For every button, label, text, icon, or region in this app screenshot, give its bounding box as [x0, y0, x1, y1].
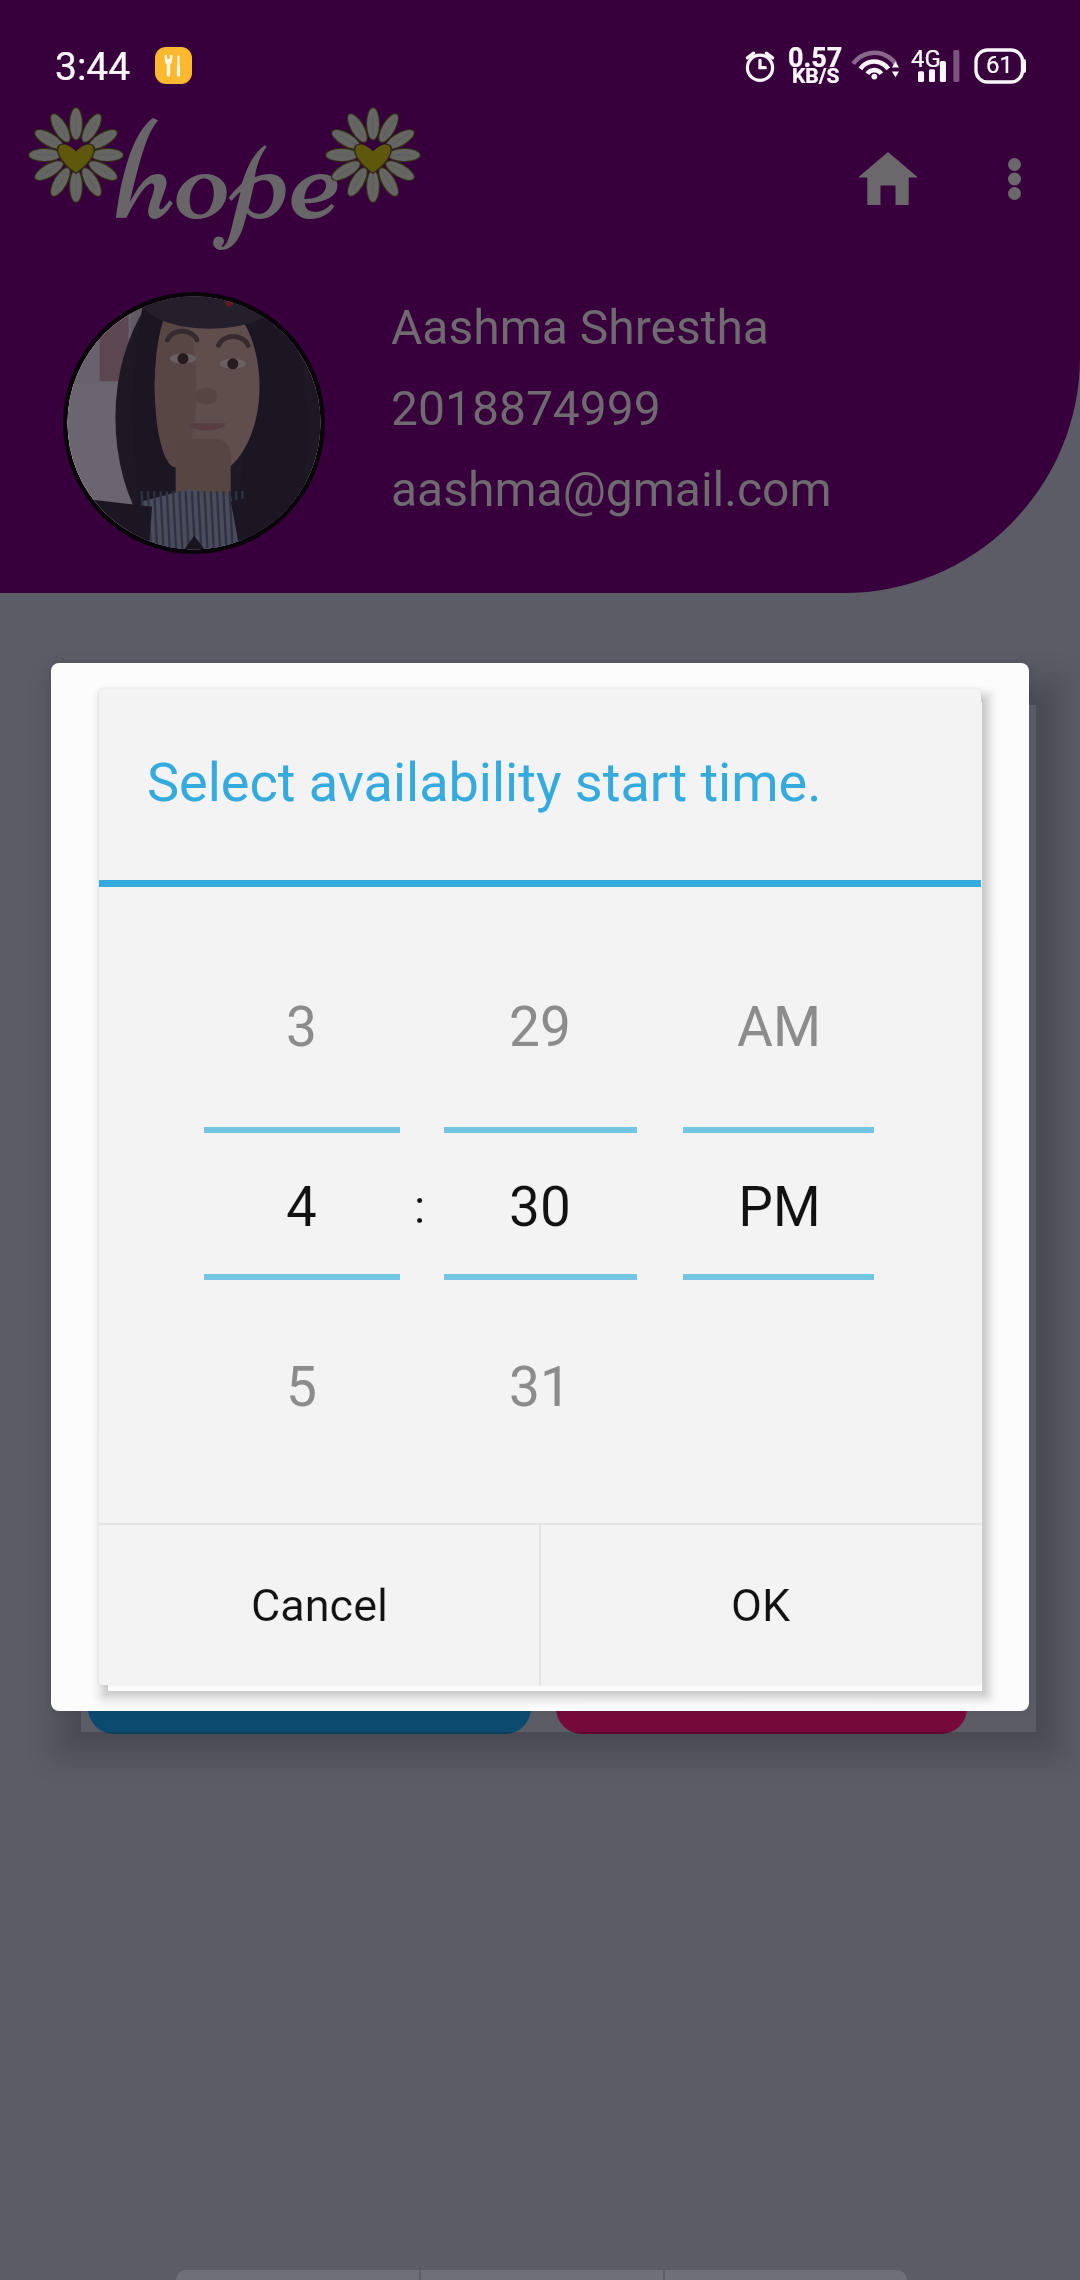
button[interactable]: Set end time — [556, 1624, 967, 1734]
staticText: 61 — [986, 51, 1013, 79]
staticText: aashma@gmail.com — [391, 461, 832, 517]
staticText: 2018874999 — [391, 380, 661, 436]
staticText: AM — [737, 995, 821, 1059]
button[interactable]: Profile photo — [63, 292, 325, 554]
staticText: 29 — [509, 995, 571, 1059]
staticText: OK — [731, 1579, 791, 1632]
button[interactable]: Home — [828, 119, 947, 238]
button[interactable]: 30 — [442, 1164, 638, 1250]
button[interactable]: 4 — [203, 1164, 399, 1250]
button[interactable]: 3 — [203, 984, 399, 1070]
staticText: Cancel — [251, 1579, 388, 1632]
staticText: 0.57 — [788, 42, 843, 74]
staticText: : — [414, 1180, 426, 1234]
button[interactable]: Cancel — [99, 1525, 539, 1685]
staticText: 31 — [509, 1355, 571, 1419]
staticText: Select availability start time. — [147, 751, 822, 814]
button[interactable]: PM — [681, 1164, 877, 1250]
staticText: KB/S — [792, 64, 840, 89]
button[interactable]: Set start time — [88, 1624, 531, 1734]
staticText: 4 — [286, 1175, 317, 1239]
button[interactable]: 29 — [442, 984, 638, 1070]
button[interactable]: OK — [541, 1525, 981, 1685]
button[interactable]: 31 — [442, 1344, 638, 1430]
staticText: 3 — [286, 995, 317, 1059]
staticText: hope — [117, 81, 343, 260]
staticText: 4G — [911, 45, 941, 73]
button[interactable]: More options — [955, 119, 1074, 238]
staticText: 5 — [286, 1355, 317, 1419]
staticText: PM — [738, 1175, 821, 1239]
button[interactable]: AM — [681, 984, 877, 1070]
staticText: 3:44 — [55, 44, 131, 90]
button[interactable]: 5 — [203, 1344, 399, 1430]
staticText: 30 — [509, 1175, 571, 1239]
staticText: Aashma Shrestha — [391, 299, 769, 355]
